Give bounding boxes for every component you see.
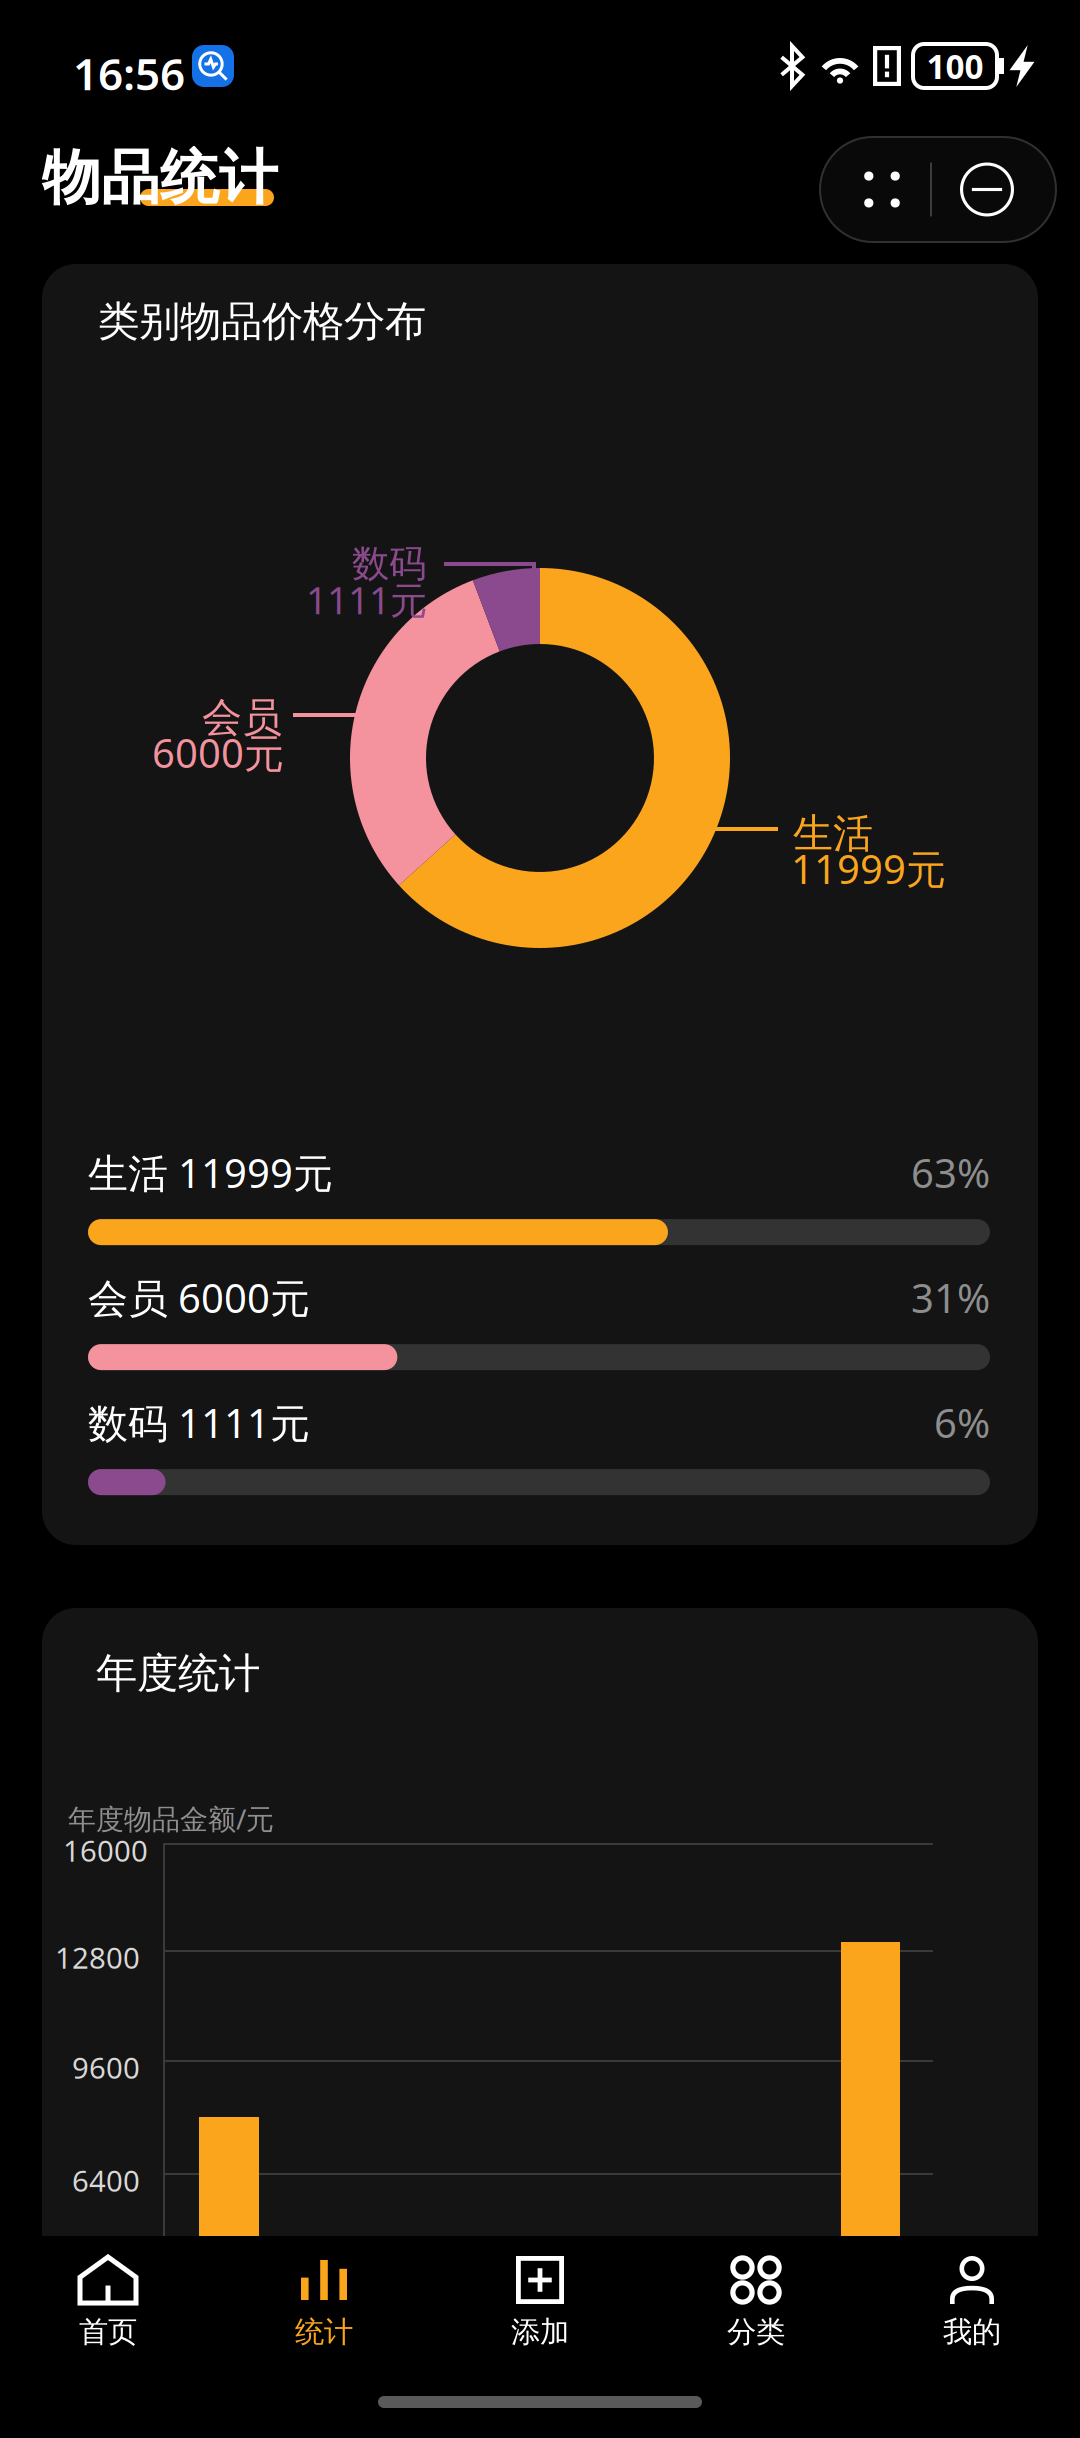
staticText: 生活: [793, 809, 873, 858]
staticText: 我的: [943, 2314, 1001, 2350]
staticText: 会员 6000元: [88, 1271, 310, 1324]
staticText: 年度统计: [96, 1648, 260, 1699]
staticText: 类别物品价格分布: [98, 296, 426, 347]
staticText: 6000元: [152, 726, 284, 779]
staticText: 16:56: [73, 44, 185, 102]
staticText: 统计: [295, 2314, 353, 2350]
staticText: 数码: [352, 541, 426, 587]
staticText: 添加: [511, 2314, 569, 2350]
button[interactable]: 统计: [216, 2250, 432, 2356]
staticText: 数码 1111元: [88, 1396, 310, 1449]
staticText: 31%: [911, 1271, 990, 1324]
staticText: 9600: [72, 2048, 140, 2087]
button[interactable]: Minimise app: [932, 137, 1056, 242]
staticText: 6%: [934, 1396, 990, 1449]
staticText: 生活 11999元: [88, 1146, 333, 1199]
staticText: 100: [926, 44, 983, 88]
button[interactable]: 分类: [648, 2250, 864, 2356]
staticText: 16000: [63, 1831, 148, 1870]
staticText: 会员: [202, 693, 282, 742]
staticText: 12800: [55, 1938, 140, 1977]
staticText: 63%: [911, 1146, 990, 1199]
button[interactable]: Recent apps: [820, 137, 930, 242]
staticText: 物品统计: [42, 142, 278, 214]
staticText: 1111元: [306, 575, 427, 625]
button[interactable]: 添加: [432, 2250, 648, 2356]
staticText: 年度物品金额/元: [68, 1800, 274, 1837]
button[interactable]: 我的: [864, 2250, 1080, 2356]
staticText: 分类: [727, 2314, 785, 2350]
staticText: 6400: [72, 2161, 140, 2200]
staticText: 首页: [79, 2314, 137, 2350]
button[interactable]: 首页: [0, 2250, 216, 2356]
staticText: 11999元: [791, 842, 946, 895]
